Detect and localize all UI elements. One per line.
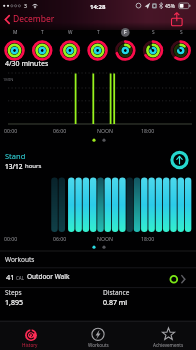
staticText: hours <box>25 162 42 170</box>
button[interactable] <box>1 28 28 62</box>
button[interactable]: History <box>0 321 65 350</box>
button[interactable] <box>167 10 189 28</box>
staticText: 4/30 minutes <box>5 59 49 69</box>
button[interactable] <box>84 28 111 62</box>
staticText: S <box>152 29 155 35</box>
staticText: 1,895 <box>5 298 23 308</box>
staticText: 06:00 <box>53 127 67 134</box>
staticText: 41 <box>6 272 15 282</box>
button[interactable]: December <box>0 11 64 28</box>
staticText: 18:00 <box>141 127 155 134</box>
staticText: Steps <box>5 288 22 297</box>
staticText: Workouts <box>88 342 109 348</box>
staticText: F <box>124 29 127 35</box>
staticText: History <box>22 342 38 348</box>
staticText: Outdoor Walk <box>27 272 70 281</box>
staticText: T <box>41 29 44 35</box>
staticText: NOON <box>97 235 113 242</box>
staticText: Workouts <box>5 255 35 264</box>
staticText: December <box>13 13 55 25</box>
staticText: NOON <box>97 127 113 134</box>
button[interactable] <box>140 28 167 62</box>
staticText: 00:00 <box>4 127 18 134</box>
staticText: Distance <box>103 288 130 297</box>
staticText: 00:00 <box>4 235 18 242</box>
staticText: Achievements <box>153 342 184 348</box>
staticText: W <box>68 29 73 35</box>
button[interactable] <box>29 28 56 62</box>
button[interactable] <box>112 28 139 62</box>
button[interactable] <box>56 28 83 62</box>
staticText: 06:00 <box>53 235 67 242</box>
staticText: 18:00 <box>141 235 155 242</box>
staticText: Stand <box>5 151 26 161</box>
button[interactable]: Workouts <box>65 321 130 350</box>
staticText: CAL <box>16 275 25 281</box>
staticText: 3 <box>24 3 27 10</box>
staticText: 13/12 <box>5 162 23 171</box>
staticText: 45% <box>165 3 175 10</box>
staticText: 0.87 mi <box>103 298 128 308</box>
button[interactable]: 41 <box>0 268 196 287</box>
staticText: M <box>13 29 18 35</box>
staticText: T <box>97 29 100 35</box>
button[interactable] <box>170 151 189 170</box>
staticText: 1MIN <box>3 77 14 82</box>
button[interactable]: Achievements <box>130 321 196 350</box>
button[interactable] <box>167 28 194 62</box>
staticText: 14:28 <box>90 3 106 11</box>
staticText: S <box>180 29 183 35</box>
